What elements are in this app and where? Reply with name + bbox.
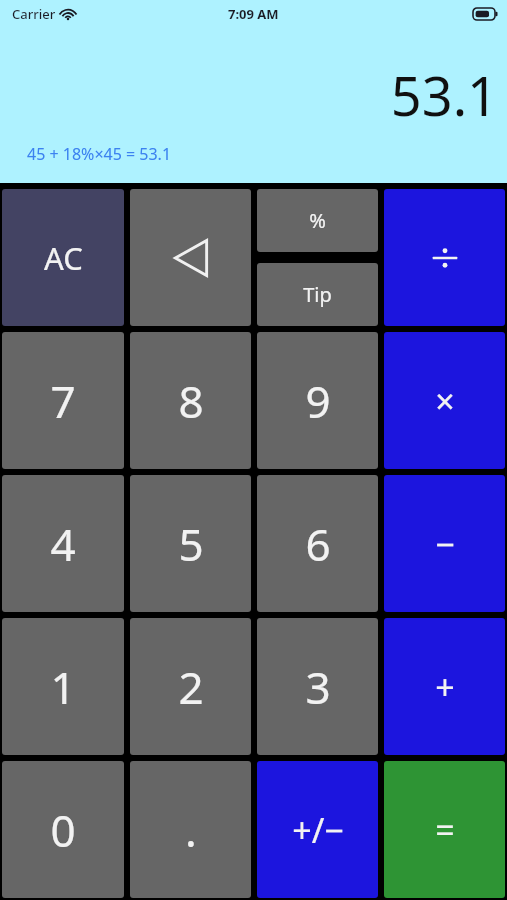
button[interactable]: Divide <box>384 189 505 326</box>
staticText: 45 + 18%×45 = 53.1 <box>27 143 172 165</box>
button[interactable]: 4 <box>2 475 124 612</box>
button[interactable]: 9 <box>257 332 378 469</box>
staticText: 1 <box>50 657 76 717</box>
button[interactable]: Add <box>384 618 505 755</box>
staticText: +/− <box>292 807 344 853</box>
button[interactable]: 6 <box>257 475 378 612</box>
staticText: AC <box>44 237 83 279</box>
button[interactable]: 7 <box>2 332 124 469</box>
staticText: 0 <box>50 800 76 860</box>
staticText: 5 <box>178 514 204 574</box>
staticText: 8 <box>178 371 204 431</box>
staticText: × <box>435 378 455 424</box>
staticText: − <box>435 521 455 567</box>
button[interactable]: Tip <box>257 263 378 326</box>
staticText: . <box>185 800 197 860</box>
button[interactable]: AC <box>2 189 124 326</box>
button[interactable]: 3 <box>257 618 378 755</box>
staticText: + <box>435 664 455 710</box>
button[interactable]: % <box>257 189 378 252</box>
button[interactable]: Toggle sign <box>257 761 378 898</box>
button[interactable]: Equals <box>384 761 505 898</box>
button[interactable]: 1 <box>2 618 124 755</box>
button[interactable]: Multiply <box>384 332 505 469</box>
button[interactable]: 8 <box>130 332 251 469</box>
staticText: 4 <box>50 514 76 574</box>
staticText: Tip <box>303 281 332 308</box>
staticText: 6 <box>305 514 331 574</box>
staticText: 7:09 AM <box>228 5 279 23</box>
staticText: 9 <box>305 371 331 431</box>
button[interactable]: Backspace <box>130 189 251 326</box>
button[interactable]: 2 <box>130 618 251 755</box>
button[interactable]: 5 <box>130 475 251 612</box>
staticText: 3 <box>305 657 331 717</box>
staticText: 2 <box>178 657 204 717</box>
button[interactable]: . <box>130 761 251 898</box>
button[interactable]: 0 <box>2 761 124 898</box>
staticText: 7 <box>50 371 76 431</box>
staticText: % <box>309 207 326 234</box>
staticText: Carrier <box>12 5 56 23</box>
staticText: = <box>435 807 455 853</box>
button[interactable]: Subtract <box>384 475 505 612</box>
staticText: 53.1 <box>390 58 498 132</box>
